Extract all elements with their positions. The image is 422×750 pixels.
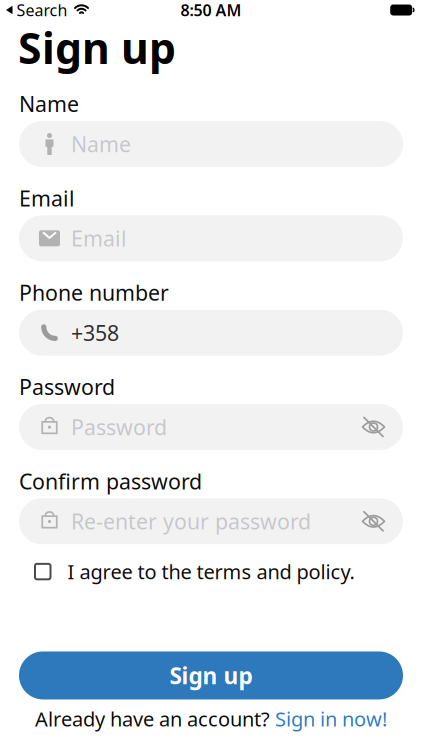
staticText: Already have an account?: [35, 705, 270, 732]
staticText: Email: [19, 184, 75, 212]
button[interactable]: Email field: [19, 215, 403, 261]
button[interactable]: Confirm password field: [19, 498, 403, 544]
button[interactable]: Name field: [19, 121, 403, 167]
staticText: Phone number: [19, 278, 169, 307]
button[interactable]: Phone number field: [19, 310, 403, 356]
staticText: Search: [16, 0, 67, 21]
staticText: Name: [19, 90, 79, 118]
staticText: 8:50 AM: [180, 0, 241, 21]
staticText: I agree to the terms and policy.: [67, 558, 354, 585]
staticText: Sign in now!: [275, 705, 387, 732]
button[interactable]: Back to Search: [6, 0, 89, 21]
button[interactable]: Password field: [19, 404, 403, 450]
button[interactable]: Sign in now!: [275, 705, 387, 732]
button[interactable]: Sign up: [19, 651, 403, 699]
button[interactable]: Show password: [362, 417, 385, 437]
staticText: Re-enter your password: [71, 507, 311, 535]
staticText: Password: [19, 373, 115, 401]
staticText: Sign up: [169, 660, 252, 690]
button[interactable]: Show password: [362, 511, 385, 531]
button[interactable]: I agree to the terms and policy: [35, 558, 354, 585]
staticText: Sign up: [18, 19, 176, 76]
staticText: Name: [71, 130, 131, 158]
staticText: +358: [71, 318, 119, 347]
staticText: Password: [71, 413, 167, 441]
staticText: Email: [71, 224, 127, 252]
staticText: Confirm password: [19, 467, 202, 495]
